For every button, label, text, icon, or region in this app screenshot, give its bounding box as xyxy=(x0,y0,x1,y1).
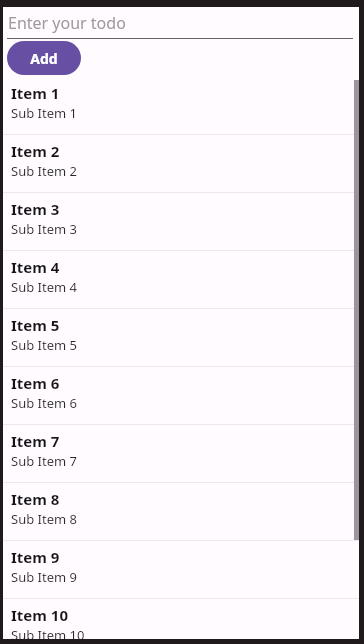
button[interactable]: Item 6 xyxy=(3,367,359,424)
staticText: Item 4 xyxy=(11,257,60,277)
staticText: Item 2 xyxy=(11,141,60,161)
staticText: Sub Item 4 xyxy=(11,278,77,296)
button[interactable]: Enter your todo xyxy=(3,7,359,39)
button[interactable]: Item 4 xyxy=(3,251,359,308)
staticText: Sub Item 7 xyxy=(11,452,77,470)
button[interactable]: Item 10 xyxy=(3,599,359,639)
staticText: Item 5 xyxy=(11,315,60,335)
staticText: Sub Item 5 xyxy=(11,336,77,354)
button[interactable]: Item 1 xyxy=(3,77,359,134)
button[interactable]: Item 9 xyxy=(3,541,359,598)
button[interactable]: Item 3 xyxy=(3,193,359,250)
staticText: Sub Item 1 xyxy=(11,104,77,122)
staticText: Sub Item 9 xyxy=(11,568,77,586)
staticText: Item 9 xyxy=(11,547,60,567)
staticText: Item 3 xyxy=(11,199,60,219)
staticText: Sub Item 10 xyxy=(11,626,85,639)
staticText: Item 1 xyxy=(11,83,60,103)
staticText: Sub Item 2 xyxy=(11,162,77,180)
staticText: Sub Item 6 xyxy=(11,394,77,412)
staticText: Item 7 xyxy=(11,431,60,451)
staticText: Item 10 xyxy=(11,605,68,625)
button[interactable]: Item 7 xyxy=(3,425,359,482)
staticText: Item 8 xyxy=(11,489,60,509)
button[interactable]: Item 8 xyxy=(3,483,359,540)
staticText: Sub Item 8 xyxy=(11,510,77,528)
button[interactable]: Item 2 xyxy=(3,135,359,192)
staticText: Sub Item 3 xyxy=(11,220,77,238)
staticText: Enter your todo xyxy=(8,12,126,34)
button[interactable]: Item 5 xyxy=(3,309,359,366)
staticText: Item 6 xyxy=(11,373,60,393)
button[interactable]: Add xyxy=(7,41,81,75)
staticText: Add xyxy=(30,49,58,68)
